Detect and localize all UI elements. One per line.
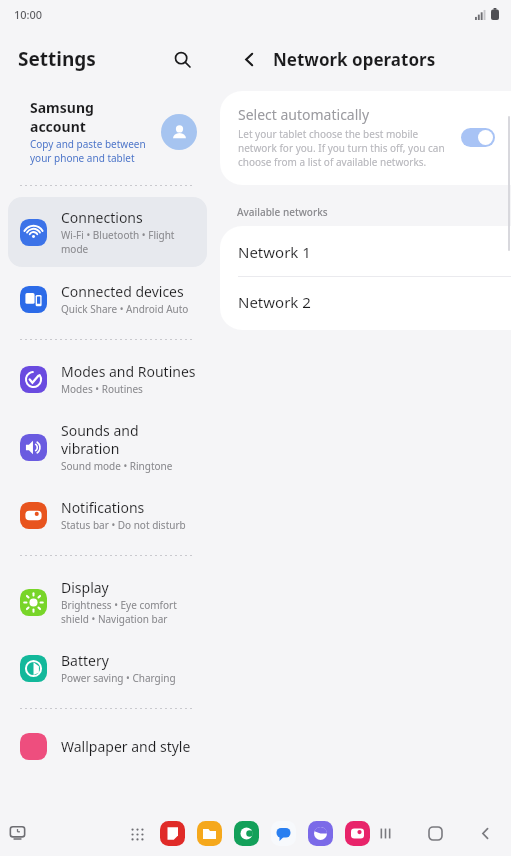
button[interactable]: Sounds and vibration xyxy=(8,410,207,484)
staticText: Settings xyxy=(18,46,167,72)
staticText: Status bar • Do not disturb xyxy=(61,518,186,532)
button[interactable]: Samsung xyxy=(8,90,207,173)
staticText: 10:00 xyxy=(14,7,43,22)
staticText: Network 1 xyxy=(238,242,311,262)
button[interactable]: Network 1 xyxy=(220,226,511,276)
staticText: Modes • Routines xyxy=(61,382,143,396)
button[interactable]: Back xyxy=(473,821,497,845)
staticText: Select automatically xyxy=(238,105,370,124)
staticText: Brightness • Eye comfort shield • Naviga… xyxy=(61,598,197,626)
staticText: Display xyxy=(61,578,109,597)
staticText: Wi-Fi • Bluetooth • Flight mode xyxy=(61,228,197,256)
button[interactable]: Apps xyxy=(126,823,148,845)
staticText: Network operators xyxy=(273,48,436,71)
staticText: Modes and Routines xyxy=(61,362,196,381)
staticText: Sounds and vibration xyxy=(61,421,197,458)
staticText: Copy and paste between your phone and ta… xyxy=(30,137,155,165)
button[interactable]: Select automatically xyxy=(220,91,511,185)
staticText: Notifications xyxy=(61,498,145,517)
button[interactable]: Notifications xyxy=(8,487,207,543)
button[interactable]: Display xyxy=(8,567,207,637)
staticText: Battery xyxy=(61,651,109,670)
staticText: Power saving • Charging xyxy=(61,671,176,685)
button[interactable]: Modes and Routines xyxy=(8,351,207,407)
button[interactable]: Recent apps xyxy=(373,821,397,845)
button[interactable]: App xyxy=(197,821,222,846)
button[interactable]: Wallpaper and style xyxy=(8,720,207,772)
staticText: Available networks xyxy=(237,205,328,219)
button[interactable]: App xyxy=(271,821,296,846)
button[interactable]: App xyxy=(234,821,259,846)
staticText: Quick Share • Android Auto xyxy=(61,302,189,316)
button[interactable]: Network 2 xyxy=(220,277,511,330)
staticText: Samsung xyxy=(30,98,94,117)
button[interactable]: Home xyxy=(423,821,447,845)
button[interactable]: Select automatically toggle xyxy=(461,128,495,147)
button[interactable]: Back xyxy=(233,43,265,75)
button[interactable]: App xyxy=(308,821,333,846)
button[interactable]: App xyxy=(160,821,185,846)
staticText: Connected devices xyxy=(61,282,184,301)
staticText: account xyxy=(30,117,86,136)
button[interactable]: Recents xyxy=(6,822,28,844)
button[interactable]: Battery xyxy=(8,640,207,696)
button[interactable]: App xyxy=(345,821,370,846)
staticText: Connections xyxy=(61,208,143,227)
staticText: Sound mode • Ringtone xyxy=(61,459,173,473)
staticText: Network 2 xyxy=(238,292,311,312)
button[interactable]: Search xyxy=(167,44,197,74)
button[interactable]: Connected devices xyxy=(8,271,207,327)
button[interactable]: Connections xyxy=(8,197,207,267)
staticText: Let your tablet choose the best mobile n… xyxy=(238,127,451,169)
staticText: Wallpaper and style xyxy=(61,737,191,756)
